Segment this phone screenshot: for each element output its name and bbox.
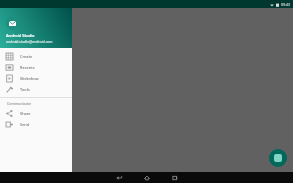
- staticText: Slideshow: [20, 76, 39, 81]
- button[interactable]: Tools: [0, 84, 72, 95]
- button[interactable]: Recents: [161, 172, 189, 183]
- button[interactable]: Send: [0, 119, 72, 130]
- staticText: Communicate: [7, 101, 32, 106]
- button[interactable]: Create: [0, 51, 72, 62]
- staticText: android.studio@android.com: [6, 39, 53, 44]
- button[interactable]: Recents: [0, 62, 72, 73]
- staticText: Android Studio: [6, 33, 35, 38]
- staticText: Share: [20, 111, 31, 116]
- staticText: Create: [20, 54, 33, 59]
- staticText: 09:43: [281, 2, 290, 7]
- button[interactable]: Back: [105, 172, 133, 183]
- button[interactable]: Compose: [269, 149, 287, 167]
- button[interactable]: Home: [133, 172, 161, 183]
- button[interactable]: Share: [0, 108, 72, 119]
- button[interactable]: Slideshow: [0, 73, 72, 84]
- staticText: Tools: [20, 87, 30, 92]
- staticText: Send: [20, 122, 30, 127]
- staticText: Recents: [20, 65, 35, 70]
